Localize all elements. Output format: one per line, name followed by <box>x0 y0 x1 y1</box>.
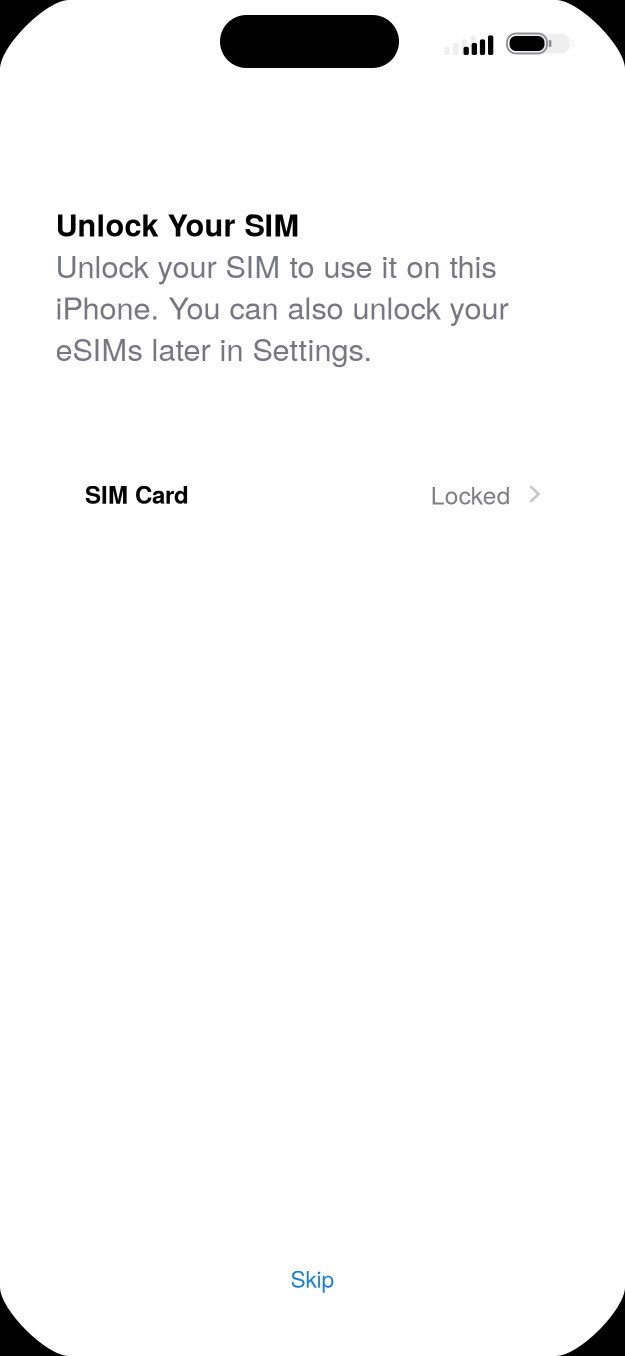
staticText: Unlock your SIM to use it on this <box>55 243 496 287</box>
staticText: eSIMs later in Settings. <box>55 326 372 370</box>
staticText: iPhone. You can also unlock your <box>55 284 508 328</box>
staticText: Locked <box>431 476 511 511</box>
staticText: Skip <box>290 1262 334 1294</box>
staticText: SIM Card <box>85 477 189 511</box>
button[interactable]: Skip <box>0 1256 625 1300</box>
button[interactable]: SIM Card <box>0 472 625 516</box>
staticText: Unlock Your SIM <box>55 202 299 246</box>
